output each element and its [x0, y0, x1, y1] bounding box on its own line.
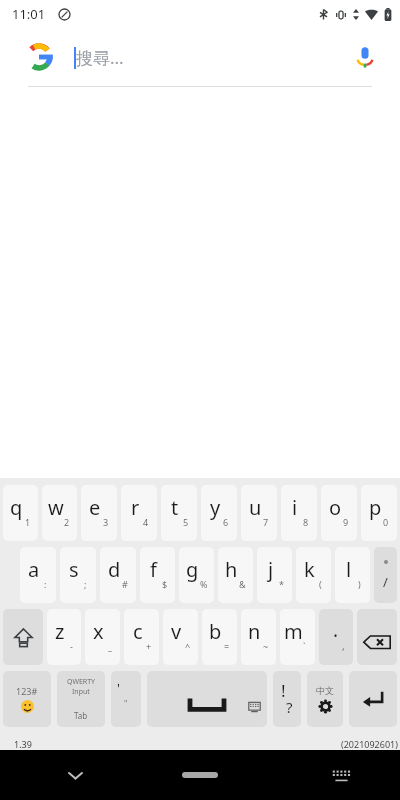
staticText: 5: [183, 516, 189, 528]
staticText: #: [122, 578, 128, 590]
button[interactable]: Quote: [111, 671, 141, 727]
staticText: Tab: [74, 710, 88, 721]
button[interactable]: g: [179, 547, 214, 603]
button[interactable]: h: [218, 547, 253, 603]
button[interactable]: Shift: [3, 609, 43, 665]
staticText: k: [304, 556, 315, 583]
staticText: q: [10, 494, 23, 521]
button[interactable]: l: [335, 547, 370, 603]
staticText: d: [108, 556, 121, 583]
staticText: 7: [263, 516, 269, 528]
staticText: ): [358, 578, 361, 590]
staticText: 1: [25, 516, 31, 528]
button[interactable]: Voice search: [354, 46, 376, 68]
button[interactable]: k: [296, 547, 331, 603]
button[interactable]: z: [47, 609, 81, 665]
staticText: b: [209, 618, 222, 645]
staticText: `: [303, 640, 306, 652]
button[interactable]: QWERTY input / Tab: [57, 671, 105, 727]
button[interactable]: t: [161, 485, 197, 541]
staticText: x: [93, 618, 104, 645]
staticText: +: [146, 640, 152, 652]
button[interactable]: w: [42, 485, 77, 541]
button[interactable]: b: [202, 609, 237, 665]
staticText: f: [150, 556, 157, 583]
button[interactable]: Enter: [349, 671, 397, 727]
button[interactable]: j: [257, 547, 292, 603]
staticText: (2021092601): [341, 738, 398, 750]
other: Google: [26, 44, 52, 70]
staticText: .: [333, 617, 339, 643]
staticText: z: [55, 618, 65, 645]
staticText: s: [69, 556, 79, 583]
staticText: ^: [185, 640, 191, 652]
button[interactable]: p: [361, 485, 397, 541]
staticText: 3: [103, 516, 109, 528]
button[interactable]: Chinese input settings: [307, 671, 343, 727]
staticText: 搜尋...: [76, 46, 124, 69]
staticText: e: [89, 494, 101, 521]
staticText: 8: [303, 516, 309, 528]
button[interactable]: Home: [182, 772, 218, 778]
button[interactable]: Slash: [374, 547, 397, 603]
staticText: %: [200, 578, 208, 590]
staticText: r: [131, 494, 140, 521]
staticText: u: [249, 494, 262, 521]
button[interactable]: Space: [147, 671, 267, 727]
staticText: Input: [72, 687, 90, 697]
staticText: ': [117, 679, 120, 697]
button[interactable]: o: [321, 485, 357, 541]
staticText: 123#: [16, 685, 38, 697]
button[interactable]: Period: [319, 609, 353, 665]
button[interactable]: n: [241, 609, 276, 665]
button[interactable]: a: [20, 547, 56, 603]
button[interactable]: Switch keyboard: [324, 758, 358, 792]
button[interactable]: r: [121, 485, 157, 541]
staticText: ": [124, 698, 128, 709]
staticText: QWERTY: [67, 677, 96, 687]
button[interactable]: x: [85, 609, 120, 665]
staticText: &: [239, 578, 246, 590]
button[interactable]: Hide keyboard: [58, 758, 92, 792]
staticText: l: [346, 556, 352, 583]
button[interactable]: d: [100, 547, 136, 603]
button[interactable]: i: [281, 485, 317, 541]
button[interactable]: s: [60, 547, 96, 603]
button[interactable]: q: [3, 485, 38, 541]
staticText: (: [319, 578, 322, 590]
staticText: ,: [342, 639, 345, 653]
button[interactable]: y: [201, 485, 237, 541]
staticText: 11:01: [12, 5, 46, 23]
button[interactable]: e: [81, 485, 117, 541]
button[interactable]: m: [280, 609, 315, 665]
staticText: c: [133, 618, 143, 645]
button[interactable]: Google: [0, 28, 400, 86]
staticText: -: [70, 640, 73, 652]
staticText: i: [292, 494, 298, 521]
button[interactable]: u: [241, 485, 277, 541]
staticText: y: [210, 494, 221, 521]
staticText: 4: [143, 516, 149, 528]
staticText: v: [171, 618, 182, 645]
staticText: $: [162, 578, 168, 590]
staticText: ?: [286, 697, 293, 717]
staticText: *: [279, 578, 284, 590]
staticText: w: [48, 494, 64, 521]
button[interactable]: f: [140, 547, 175, 603]
staticText: ;: [84, 578, 87, 590]
staticText: /: [383, 573, 388, 591]
staticText: m: [284, 618, 303, 645]
staticText: !: [281, 679, 286, 702]
staticText: 0: [383, 516, 389, 528]
button[interactable]: Exclamation question: [273, 671, 301, 727]
staticText: n: [248, 618, 261, 645]
button[interactable]: Symbols: [3, 671, 51, 727]
staticText: 中文: [316, 685, 334, 696]
staticText: _: [108, 640, 112, 652]
button[interactable]: Delete: [357, 609, 397, 665]
staticText: a: [28, 556, 40, 583]
staticText: g: [186, 556, 199, 583]
button[interactable]: v: [163, 609, 198, 665]
staticText: 6: [223, 516, 229, 528]
button[interactable]: c: [124, 609, 159, 665]
